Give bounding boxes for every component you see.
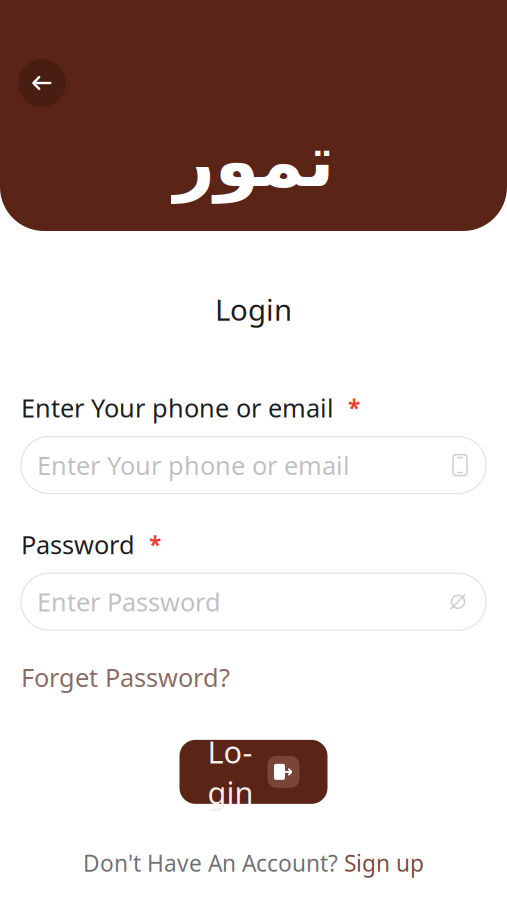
- staticText: *: [348, 393, 360, 423]
- button[interactable]: Login: [179, 740, 327, 804]
- button[interactable]: Sign up: [344, 848, 424, 878]
- staticText: Password: [21, 528, 135, 561]
- button[interactable]: Forget Password?: [21, 656, 230, 698]
- staticText: Don't Have An Account?: [83, 848, 338, 878]
- button[interactable]: Back: [18, 59, 66, 107]
- staticText: Enter Your phone or email: [21, 391, 334, 425]
- staticText: تمور: [173, 120, 334, 202]
- staticText: Login: [207, 731, 253, 813]
- staticText: Enter Password: [37, 585, 221, 618]
- staticText: Login: [215, 290, 292, 329]
- staticText: Enter Your phone or email: [37, 448, 350, 482]
- button[interactable]: Show password: [21, 573, 486, 630]
- button[interactable]: Show phone keyboard: [21, 437, 486, 494]
- staticText: Forget Password?: [21, 660, 230, 694]
- staticText: Sign up: [344, 848, 424, 878]
- staticText: *: [149, 529, 161, 559]
